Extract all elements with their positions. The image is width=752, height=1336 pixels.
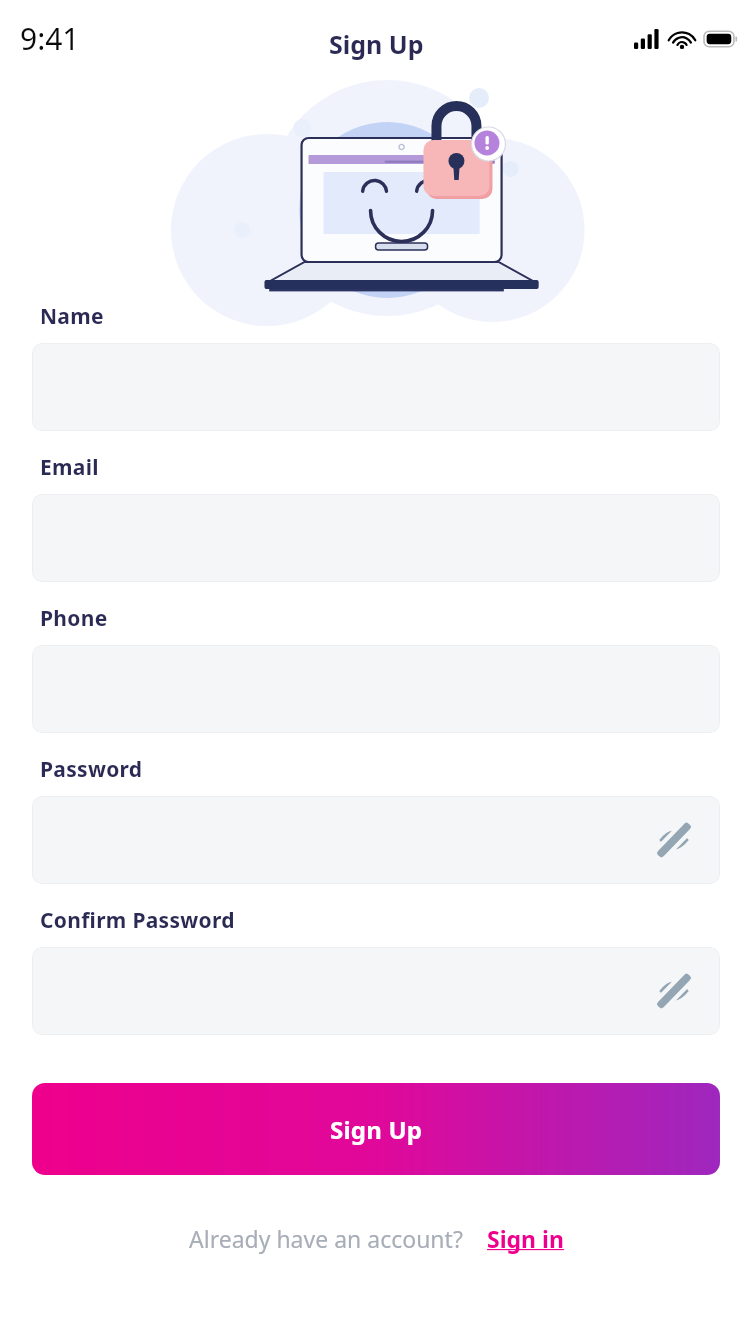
button[interactable]: Show Password xyxy=(652,818,696,862)
staticText: Email xyxy=(40,453,99,482)
staticText: Phone xyxy=(40,604,108,633)
staticText: Already have an account? xyxy=(189,1223,463,1254)
staticText: Password xyxy=(40,755,143,784)
button[interactable]: Sign in xyxy=(487,1223,564,1254)
staticText: Sign in xyxy=(487,1223,564,1254)
button[interactable]: Sign Up xyxy=(32,1083,720,1175)
staticText: 9:41 xyxy=(20,18,80,59)
button[interactable]: Show Confirm Password xyxy=(652,969,696,1013)
button[interactable]: Show Password xyxy=(32,796,720,884)
staticText: Confirm Password xyxy=(40,906,235,935)
staticText: Name xyxy=(40,302,104,331)
staticText: Sign Up xyxy=(330,1113,423,1146)
button[interactable]: Show Confirm Password xyxy=(32,947,720,1035)
staticText: Sign Up xyxy=(329,27,424,61)
